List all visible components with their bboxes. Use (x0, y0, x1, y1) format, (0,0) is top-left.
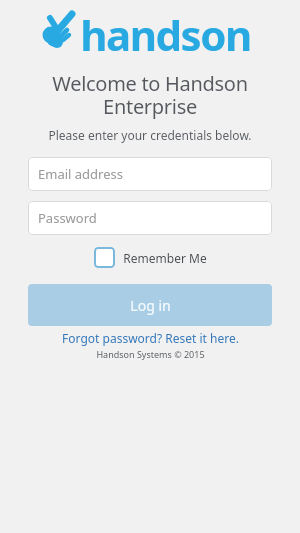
staticText: Email address (38, 165, 123, 183)
staticText: Please enter your credentials below. (48, 127, 252, 143)
staticText: Password (38, 209, 97, 227)
staticText: handson (80, 6, 251, 52)
staticText: Remember Me (123, 250, 207, 266)
button[interactable]: Email address (28, 157, 272, 191)
staticText: Log in (130, 296, 171, 315)
button[interactable]: Forgot password? Reset it here. (62, 330, 239, 346)
button[interactable]: Password (28, 201, 272, 235)
staticText: Handson Systems © 2015 (96, 348, 205, 360)
staticText: Welcome to Handson Enterprise (52, 70, 248, 120)
button[interactable]: Log in (28, 284, 272, 326)
button[interactable]: Remember Me (94, 247, 207, 268)
